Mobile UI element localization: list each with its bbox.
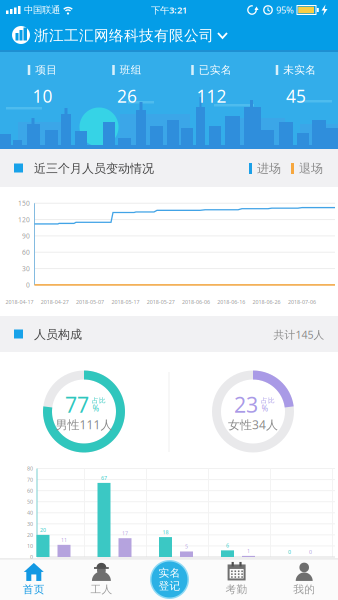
button[interactable]: 考勤: [205, 560, 269, 598]
staticText: 占比: [261, 396, 275, 405]
staticText: 共计145人: [273, 327, 324, 342]
button[interactable]: 切换企业: [10, 22, 236, 48]
staticText: 6: [226, 542, 229, 549]
staticText: 67: [101, 474, 107, 481]
staticText: 实名: [158, 566, 180, 579]
staticText: 60: [27, 487, 33, 494]
staticText: 120: [18, 215, 30, 224]
staticText: 中国联通: [24, 4, 60, 16]
staticText: 工人: [90, 583, 112, 596]
staticText: 下午3:21: [151, 4, 187, 16]
staticText: 进场: [257, 161, 281, 176]
staticText: 0: [309, 548, 312, 556]
staticText: 5: [185, 543, 188, 550]
staticText: 登记: [158, 579, 180, 593]
staticText: 10: [27, 542, 33, 549]
staticText: 未实名: [283, 63, 316, 76]
staticText: 10: [32, 84, 52, 107]
staticText: 首页: [23, 583, 45, 596]
staticText: 45: [286, 84, 306, 107]
staticText: 近三个月人员变动情况: [34, 161, 154, 176]
staticText: 退场: [299, 161, 323, 176]
staticText: 1: [247, 547, 250, 554]
staticText: 男性111人: [55, 416, 112, 432]
staticText: 0: [26, 280, 30, 289]
staticText: 女性34人: [228, 416, 278, 432]
staticText: 26: [117, 84, 137, 107]
staticText: 2018-05-07: [76, 298, 104, 306]
staticText: 0: [30, 553, 33, 561]
staticText: 浙江工汇网络科技有限公司: [34, 26, 214, 44]
staticText: 11: [61, 536, 67, 543]
staticText: 占比: [92, 396, 106, 405]
staticText: 60: [22, 248, 30, 257]
staticText: 2018-06-26: [253, 298, 281, 306]
staticText: 已实名: [199, 63, 232, 76]
staticText: 77: [65, 390, 89, 419]
staticText: 2018-04-27: [41, 298, 69, 306]
staticText: 30: [27, 520, 33, 527]
staticText: 项目: [35, 63, 57, 76]
staticText: 20: [27, 531, 33, 538]
staticText: 80: [27, 465, 33, 472]
button[interactable]: 我的: [272, 560, 336, 598]
button[interactable]: 实名登记: [149, 559, 189, 599]
staticText: 90: [22, 231, 30, 240]
staticText: 95%: [276, 4, 294, 16]
button[interactable]: 工人: [69, 560, 133, 598]
staticText: 考勤: [226, 583, 248, 596]
staticText: 2018-04-17: [5, 298, 33, 306]
button[interactable]: 首页: [2, 560, 66, 598]
staticText: %: [261, 403, 268, 414]
staticText: 0: [288, 548, 291, 556]
staticText: 17: [122, 530, 128, 537]
staticText: 20: [40, 526, 46, 533]
staticText: 30: [22, 264, 30, 273]
staticText: 2018-05-17: [111, 298, 139, 306]
staticText: 112: [196, 84, 226, 107]
staticText: 18: [162, 529, 168, 536]
staticText: 150: [18, 199, 30, 208]
staticText: 40: [27, 509, 33, 516]
staticText: 2018-05-27: [147, 298, 175, 306]
button[interactable]: 进场: [249, 161, 281, 176]
staticText: 70: [27, 476, 33, 483]
staticText: 我的: [293, 583, 315, 596]
staticText: 2018-07-06: [288, 298, 316, 306]
staticText: %: [92, 403, 99, 414]
staticText: 23: [234, 390, 258, 419]
button[interactable]: 退场: [291, 161, 323, 176]
staticText: 人员构成: [34, 327, 82, 342]
staticText: 50: [27, 498, 33, 505]
staticText: 班组: [120, 63, 142, 76]
staticText: 2018-06-06: [182, 298, 210, 306]
staticText: 2018-06-16: [217, 298, 245, 306]
